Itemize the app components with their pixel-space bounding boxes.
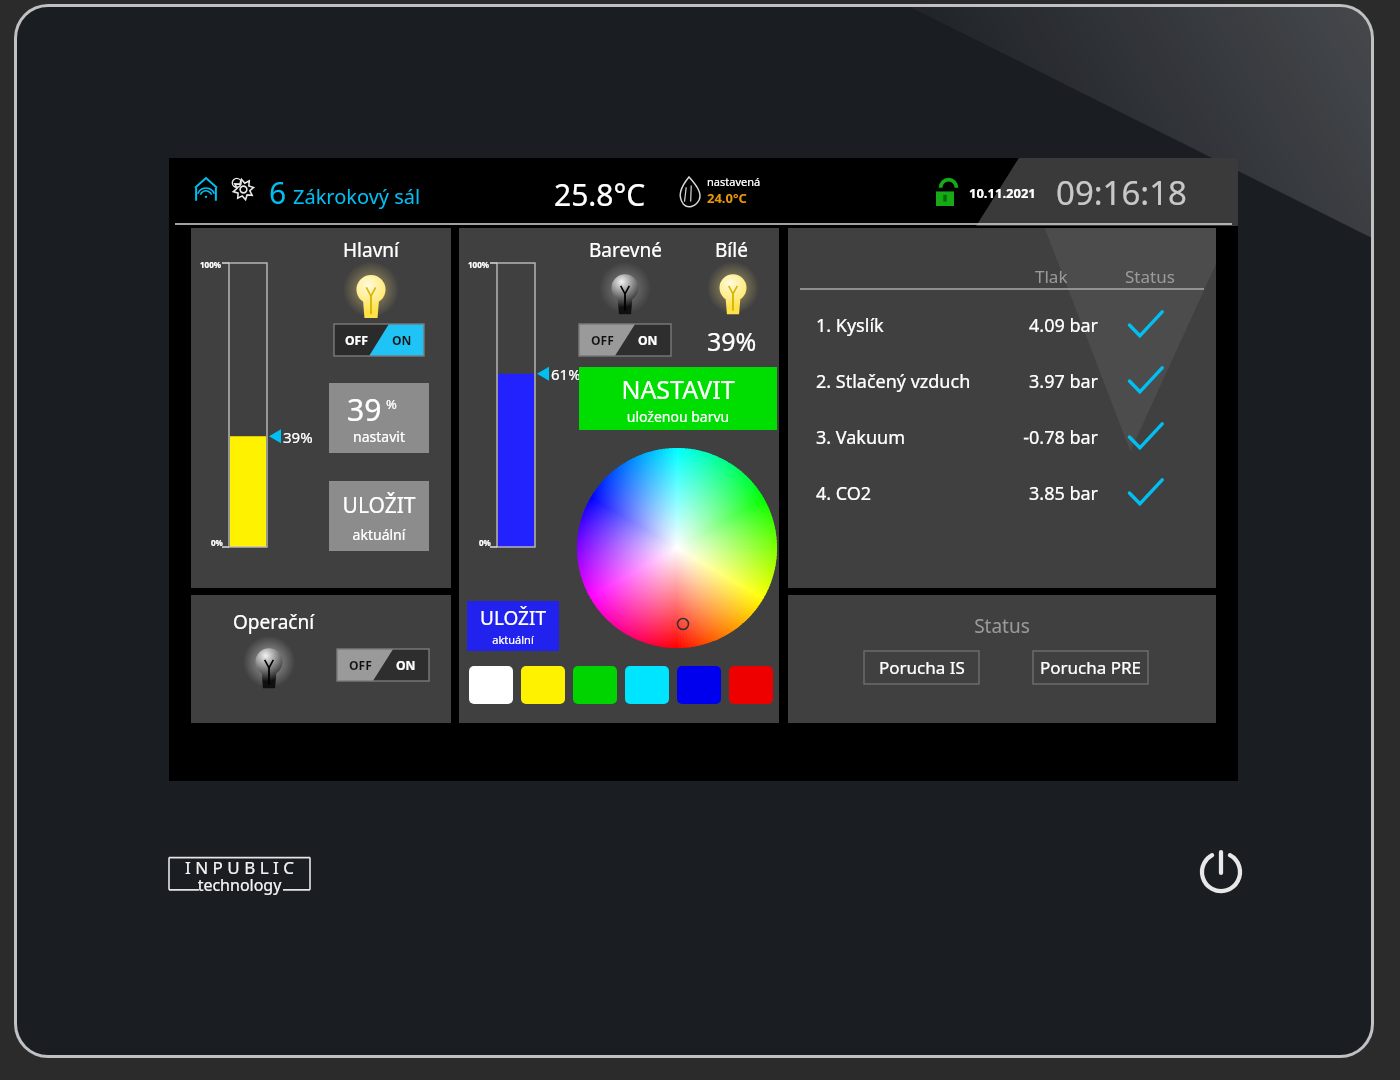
staticText: 39% — [283, 427, 313, 447]
staticText: Zákrokový sál — [293, 183, 421, 210]
staticText: 10.11.2021 — [969, 184, 1036, 202]
button[interactable]: OFF — [579, 324, 671, 356]
button[interactable] — [729, 666, 773, 704]
staticText: technology — [167, 874, 312, 896]
staticText: 25.8°C — [554, 174, 646, 215]
button[interactable]: 39 — [329, 383, 429, 453]
staticText: 6 — [269, 172, 287, 213]
staticText: NASTAVIT — [579, 372, 777, 406]
staticText: 2. Stlačený vzduch — [816, 369, 971, 394]
staticText: aktuální — [329, 525, 429, 544]
staticText: Hlavní — [343, 237, 399, 263]
button[interactable]: Power — [1191, 842, 1251, 902]
staticText: Porucha IS — [879, 656, 965, 679]
staticText: 1. Kyslík — [816, 313, 884, 338]
staticText: 24.0°C — [707, 189, 747, 207]
button[interactable]: OFF — [337, 649, 429, 681]
button[interactable] — [573, 666, 617, 704]
staticText: 0% — [479, 537, 491, 548]
staticText: 3.97 bar — [968, 369, 1098, 394]
button[interactable]: 1. Kyslík — [788, 308, 1216, 358]
staticText: Operační — [233, 609, 315, 635]
button[interactable] — [521, 666, 565, 704]
staticText: 0% — [211, 537, 223, 548]
button[interactable]: ULOŽIT — [467, 601, 559, 651]
staticText: -0.78 bar — [968, 425, 1098, 450]
button[interactable]: 3. Vakuum — [788, 420, 1216, 470]
staticText: ON — [392, 332, 412, 349]
staticText: OFF — [345, 332, 368, 349]
button[interactable]: Settings — [229, 174, 259, 204]
staticText: 100% — [200, 259, 221, 270]
staticText: 100% — [468, 259, 489, 270]
staticText: I N P U B L I C — [167, 856, 312, 879]
staticText: 3.85 bar — [968, 481, 1098, 506]
staticText: 61% — [551, 364, 581, 384]
staticText: Status — [1125, 265, 1175, 288]
staticText: uloženou barvu — [579, 407, 777, 426]
staticText: Bílé — [715, 237, 748, 263]
button[interactable]: Porucha IS — [864, 651, 979, 684]
button[interactable]: ULOŽIT — [329, 481, 429, 551]
staticText: 4.09 bar — [968, 313, 1098, 338]
staticText: ULOŽIT — [329, 491, 429, 520]
staticText: OFF — [591, 332, 614, 349]
button[interactable]: NASTAVIT — [579, 367, 777, 430]
staticText: Status — [788, 613, 1216, 639]
staticText: 4. CO2 — [816, 481, 872, 506]
staticText: 3. Vakuum — [816, 425, 906, 450]
staticText: ON — [638, 332, 658, 349]
button[interactable]: Color picker — [577, 448, 777, 648]
staticText: 39 — [347, 389, 382, 430]
staticText: nastavit — [329, 427, 429, 446]
staticText: Porucha PRE — [1040, 656, 1142, 679]
button[interactable] — [625, 666, 669, 704]
button[interactable] — [469, 666, 513, 704]
button[interactable]: 4. CO2 — [788, 476, 1216, 526]
staticText: ULOŽIT — [467, 605, 559, 631]
button[interactable]: Porucha PRE — [1033, 651, 1148, 684]
button[interactable]: 100% — [199, 259, 299, 551]
staticText: OFF — [349, 657, 372, 674]
staticText: Tlak — [1035, 265, 1068, 288]
staticText: ON — [396, 657, 416, 674]
staticText: 09:16:18 — [1056, 170, 1187, 215]
staticText: % — [386, 395, 397, 413]
button[interactable]: Home — [191, 174, 221, 204]
button[interactable]: OFF — [334, 324, 424, 356]
button[interactable]: 2. Stlačený vzduch — [788, 364, 1216, 414]
button[interactable] — [677, 666, 721, 704]
staticText: nastavená — [707, 174, 761, 189]
staticText: Barevné — [589, 237, 662, 263]
staticText: aktuální — [467, 632, 559, 647]
button[interactable]: 100% — [467, 259, 567, 551]
staticText: 39% — [707, 324, 757, 358]
